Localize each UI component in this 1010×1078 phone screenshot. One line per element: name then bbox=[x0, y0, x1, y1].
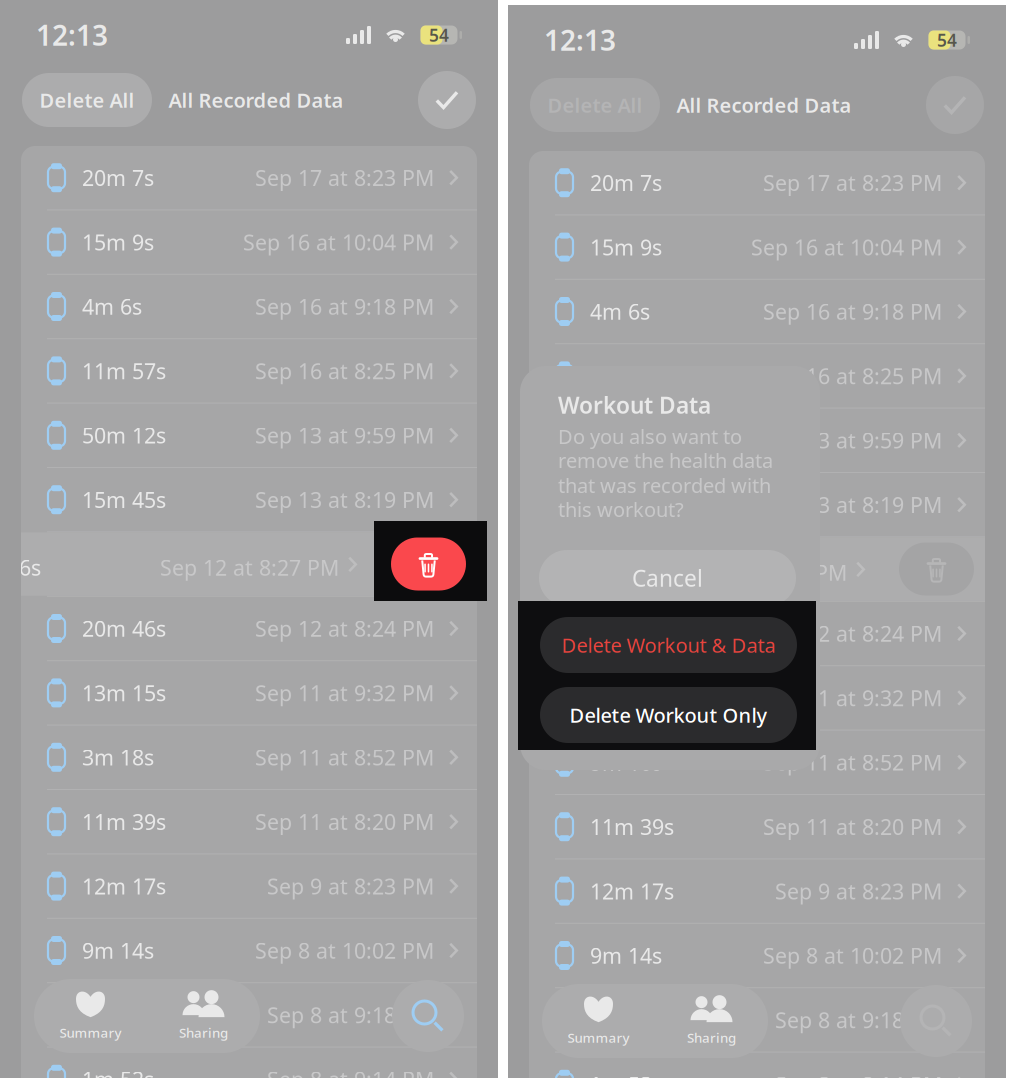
staticText: 26s bbox=[7, 553, 41, 582]
staticText: 13m 15s bbox=[82, 679, 166, 707]
button[interactable]: 3m 18s bbox=[21, 726, 477, 789]
button[interactable]: Search bbox=[900, 985, 972, 1057]
staticText: Sep 9 at 8:23 PM bbox=[267, 872, 434, 900]
staticText: Sep 13 at 8:19 PM bbox=[763, 490, 942, 519]
staticText: Sep 8 at 9:14 PM bbox=[267, 1065, 434, 1078]
button[interactable]: 20m 7s bbox=[21, 146, 477, 209]
staticText: 20m 7s bbox=[82, 163, 154, 192]
staticText: Workout Data bbox=[558, 390, 711, 420]
staticText: 11m 39s bbox=[590, 812, 674, 841]
staticText: 3m 18s bbox=[82, 743, 154, 771]
staticText: All Recorded Data bbox=[676, 92, 851, 118]
staticText: Delete All bbox=[547, 92, 642, 118]
staticText: Sep 12 at 8:24 PM bbox=[255, 614, 434, 643]
staticText: Sep 8 at 9:18 PM bbox=[267, 1001, 434, 1029]
button[interactable]: Cancel bbox=[539, 550, 796, 606]
staticText: Sep 8 at 10:02 PM bbox=[763, 941, 942, 970]
button[interactable]: 4m 6s bbox=[529, 280, 985, 343]
staticText: Sep 11 at 9:32 PM bbox=[255, 679, 434, 707]
staticText: 50m 12s bbox=[590, 426, 674, 454]
button[interactable]: 9m 14s bbox=[21, 919, 477, 982]
staticText: 5m 21s bbox=[590, 1006, 662, 1034]
button[interactable]: Delete Workout & Data bbox=[540, 617, 797, 673]
staticText: 20m 46s bbox=[82, 614, 166, 643]
staticText: Sep 12 at 8:27 PM bbox=[160, 553, 339, 582]
button[interactable]: 4m 6s bbox=[21, 275, 477, 338]
staticText: Sep 12 at 8:27 PM bbox=[668, 558, 847, 587]
staticText: Sep 17 at 8:23 PM bbox=[255, 163, 434, 192]
staticText: Sep 9 at 8:23 PM bbox=[775, 877, 942, 905]
button[interactable]: Done bbox=[418, 71, 476, 129]
button[interactable]: 50m 12s bbox=[21, 404, 477, 467]
button[interactable]: 13m 15s bbox=[21, 661, 477, 725]
button[interactable]: 11m 39s bbox=[529, 795, 985, 858]
staticText: 9m 14s bbox=[590, 941, 662, 970]
staticText: Sep 16 at 10:04 PM bbox=[243, 228, 434, 256]
staticText: Sep 13 at 9:59 PM bbox=[763, 426, 942, 454]
staticText: Sep 12 at 8:24 PM bbox=[763, 619, 942, 648]
button[interactable]: 5m 21s bbox=[21, 983, 477, 1047]
button[interactable]: 20m 7s bbox=[529, 151, 985, 214]
button[interactable]: Delete All bbox=[530, 78, 660, 132]
button[interactable]: 13m 15s bbox=[529, 666, 985, 730]
button[interactable]: 12m 17s bbox=[529, 859, 985, 923]
button[interactable]: 11m 57s bbox=[529, 344, 985, 408]
button[interactable]: Summary bbox=[34, 979, 147, 1053]
staticText: 11m 39s bbox=[82, 807, 166, 836]
staticText: 15m 45s bbox=[590, 490, 674, 519]
button[interactable]: Delete Workout Only bbox=[540, 687, 797, 743]
staticText: All Recorded Data bbox=[168, 87, 343, 113]
button[interactable]: Search bbox=[392, 980, 464, 1052]
staticText: Sep 11 at 8:20 PM bbox=[763, 812, 942, 841]
staticText: Delete All bbox=[39, 87, 134, 113]
staticText: Sep 17 at 8:23 PM bbox=[763, 168, 942, 197]
staticText: 12m 17s bbox=[590, 877, 674, 905]
button[interactable]: 3m 18s bbox=[529, 731, 985, 794]
button[interactable]: 11m 39s bbox=[21, 790, 477, 853]
staticText: Sep 13 at 9:59 PM bbox=[255, 421, 434, 449]
staticText: Sep 8 at 10:02 PM bbox=[255, 936, 434, 965]
button[interactable]: 5m 21s bbox=[529, 988, 985, 1052]
button[interactable]: 15m 45s bbox=[529, 473, 985, 536]
staticText: 12m 17s bbox=[82, 872, 166, 900]
staticText: 13m 15s bbox=[590, 684, 674, 712]
staticText: Sep 13 at 8:19 PM bbox=[255, 485, 434, 514]
staticText: Sep 8 at 9:18 PM bbox=[775, 1006, 942, 1034]
button[interactable]: 20m 46s bbox=[21, 597, 477, 660]
staticText: 9m 14s bbox=[82, 936, 154, 965]
button[interactable]: Delete workout bbox=[391, 537, 466, 590]
staticText: Sep 8 at 9:14 PM bbox=[775, 1070, 942, 1078]
button[interactable]: Sharing bbox=[655, 984, 768, 1058]
staticText: Sep 16 at 9:18 PM bbox=[255, 292, 434, 321]
staticText: this workout? bbox=[558, 496, 684, 523]
button[interactable]: 9m 14s bbox=[529, 924, 985, 987]
button[interactable]: 20m 46s bbox=[529, 602, 985, 665]
staticText: that was recorded with bbox=[558, 472, 771, 499]
button[interactable]: 1m 52s bbox=[529, 1053, 985, 1078]
staticText: 54 bbox=[429, 23, 449, 46]
button[interactable]: Delete All bbox=[22, 73, 152, 127]
button[interactable]: 50m 12s bbox=[529, 409, 985, 472]
button[interactable]: 1m 52s bbox=[21, 1048, 477, 1078]
button[interactable]: Sharing bbox=[147, 979, 260, 1053]
staticText: Do you also want to bbox=[558, 423, 742, 450]
staticText: 20m 7s bbox=[590, 168, 662, 197]
staticText: Sep 11 at 8:52 PM bbox=[763, 748, 942, 776]
staticText: 20m 46s bbox=[590, 619, 674, 648]
button[interactable]: Done bbox=[926, 76, 984, 134]
button[interactable]: Summary bbox=[542, 984, 655, 1058]
button[interactable]: 15m 45s bbox=[21, 468, 477, 531]
staticText: 11m 57s bbox=[82, 357, 166, 385]
staticText: Sep 16 at 9:18 PM bbox=[763, 297, 942, 326]
staticText: 3m 18s bbox=[590, 748, 662, 776]
button[interactable]: 12m 17s bbox=[21, 854, 477, 918]
staticText: Sep 16 at 8:25 PM bbox=[763, 362, 942, 390]
staticText: 4m 6s bbox=[590, 297, 650, 326]
button[interactable]: 11m 57s bbox=[21, 339, 477, 403]
staticText: 15m 9s bbox=[590, 233, 662, 261]
button[interactable]: 15m 9s bbox=[21, 210, 477, 274]
staticText: Delete Workout & Data bbox=[561, 632, 775, 658]
button[interactable]: 15m 9s bbox=[529, 215, 985, 279]
staticText: 1m 52s bbox=[590, 1070, 662, 1078]
